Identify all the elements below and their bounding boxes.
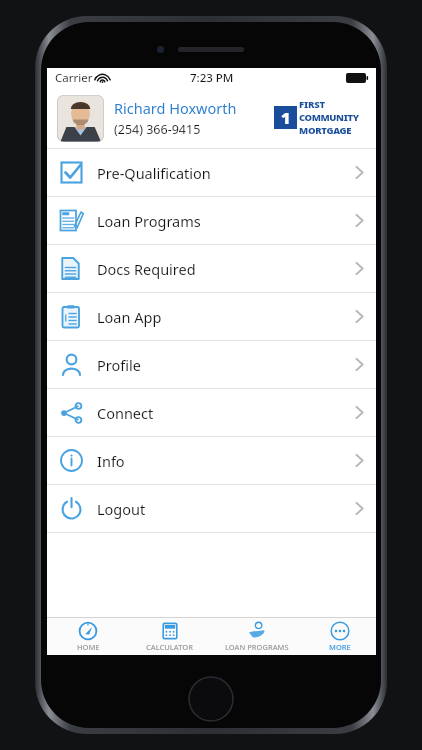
button[interactable]: Pre-Qualification [47,149,376,196]
staticText: LOAN PROGRAMS [225,642,289,652]
button[interactable]: Connect [47,389,376,436]
staticText: Info [97,451,125,471]
staticText: Logout [97,499,146,519]
staticText: Carrier [55,70,93,86]
button[interactable]: Loan App [47,293,376,340]
staticText: Richard Hoxworth [114,98,237,118]
staticText: (254) 366-9415 [114,121,201,138]
button[interactable]: Docs Required [47,245,376,292]
button[interactable]: Richard Hoxworth [47,88,376,148]
button[interactable]: HOME [47,618,129,655]
button[interactable]: Info [47,437,376,484]
staticText: Loan App [97,307,162,327]
button[interactable]: CALCULATOR [129,618,210,655]
staticText: Loan Programs [97,211,201,231]
button[interactable]: LOAN PROGRAMS [210,618,303,655]
staticText: CALCULATOR [146,642,193,652]
staticText: Profile [97,355,141,375]
staticText: Connect [97,403,154,423]
staticText: HOME [77,642,100,652]
button[interactable]: Profile [47,341,376,388]
staticText: 7:23 PM [190,70,234,86]
staticText: Pre-Qualification [97,163,211,183]
staticText: FIRST [299,98,325,111]
staticText: Docs Required [97,259,196,279]
button[interactable]: Loan Programs [47,197,376,244]
staticText: MORE [329,642,351,652]
button[interactable]: Logout [47,485,376,532]
staticText: MORTGAGE [299,124,352,137]
staticText: COMMUNITY [299,111,359,124]
button[interactable]: MORE [303,618,376,655]
staticText: 1 [281,107,291,129]
